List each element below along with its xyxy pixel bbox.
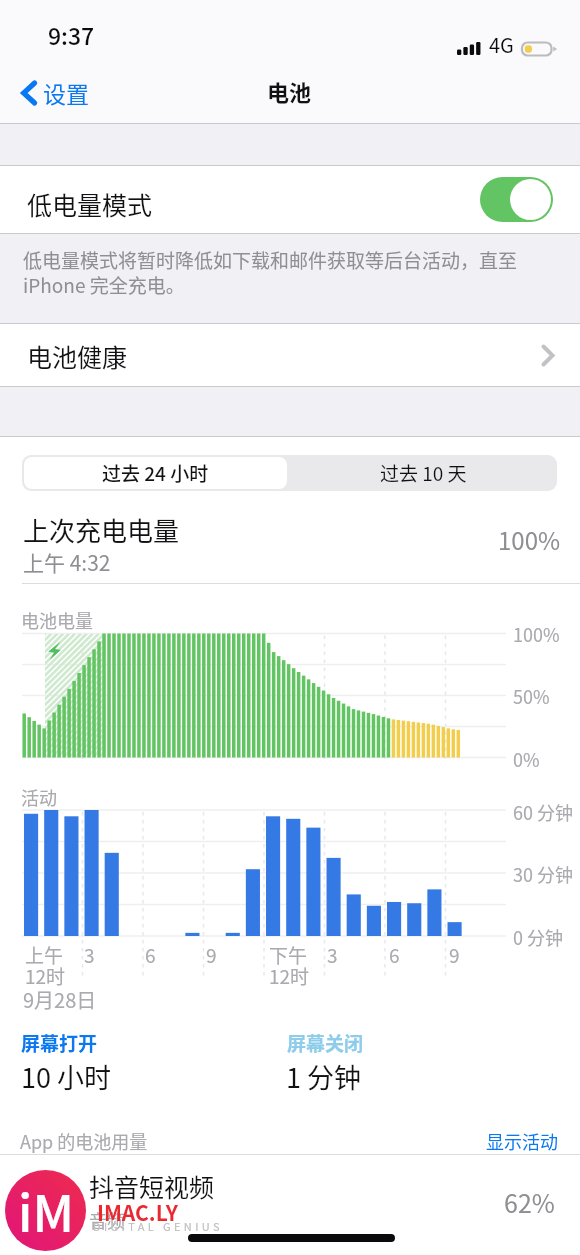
staticText: 屏幕打开 (21, 1029, 98, 1057)
staticText: 抖音短视频 (89, 1168, 215, 1204)
staticText: 30 分钟 (513, 861, 574, 887)
staticText: 上午 12时 (25, 941, 66, 989)
staticText: 电池健康 (27, 338, 128, 374)
staticText: IMAC.LY (97, 1197, 178, 1227)
button[interactable]: 过去 24 小时 (24, 457, 287, 489)
staticText: 60 分钟 (513, 799, 574, 825)
staticText: 活动 (21, 784, 57, 810)
staticText: iM (18, 1174, 74, 1246)
staticText: 9 (206, 941, 217, 969)
staticText: 6 (389, 941, 400, 969)
staticText: 3 (84, 941, 95, 969)
button[interactable]: 电池健康 (0, 324, 580, 386)
staticText: App 的电池用量 (20, 1128, 148, 1154)
staticText: 电池电量 (21, 607, 93, 633)
staticText: 62% (504, 1184, 555, 1220)
staticText: 上次充电电量 (23, 511, 180, 549)
staticText: 低电量模式将暂时降低如下载和邮件获取等后台活动，直至 iPhone 完全充电。 (23, 246, 536, 298)
staticText: 100% (513, 621, 560, 647)
staticText: DIGITAL GENIUS (93, 1218, 224, 1234)
staticText: 50% (513, 683, 550, 709)
staticText: 9月28日 (23, 985, 97, 1014)
staticText: 10 小时 (21, 1057, 112, 1096)
button[interactable]: 显示活动 (486, 1128, 558, 1154)
staticText: 设置 (43, 76, 89, 109)
button[interactable]: 过去 10 天 (289, 455, 557, 491)
staticText: 下午 12时 (269, 941, 310, 989)
staticText: 屏幕关闭 (287, 1029, 364, 1057)
staticText: 0 分钟 (513, 924, 564, 950)
staticText: 过去 10 天 (380, 459, 467, 487)
button[interactable]: 低电量模式 (0, 166, 580, 233)
staticText: 上午 4:32 (23, 547, 111, 577)
staticText: 音频 (89, 1207, 125, 1233)
staticText: 过去 24 小时 (102, 459, 209, 487)
staticText: 低电量模式 (27, 186, 153, 222)
staticText: 1 分钟 (286, 1057, 362, 1096)
staticText: 9 (449, 941, 460, 969)
staticText: 100% (498, 522, 561, 557)
staticText: 4G (489, 30, 514, 59)
button[interactable]: Low Power Mode toggle (480, 177, 553, 222)
staticText: 电池 (267, 75, 312, 107)
staticText: 6 (145, 941, 156, 969)
staticText: 0% (513, 746, 540, 772)
button[interactable] (0, 1154, 580, 1254)
staticText: 3 (327, 941, 338, 969)
staticText: 9:37 (48, 18, 95, 51)
button[interactable]: 设置 (17, 69, 94, 116)
